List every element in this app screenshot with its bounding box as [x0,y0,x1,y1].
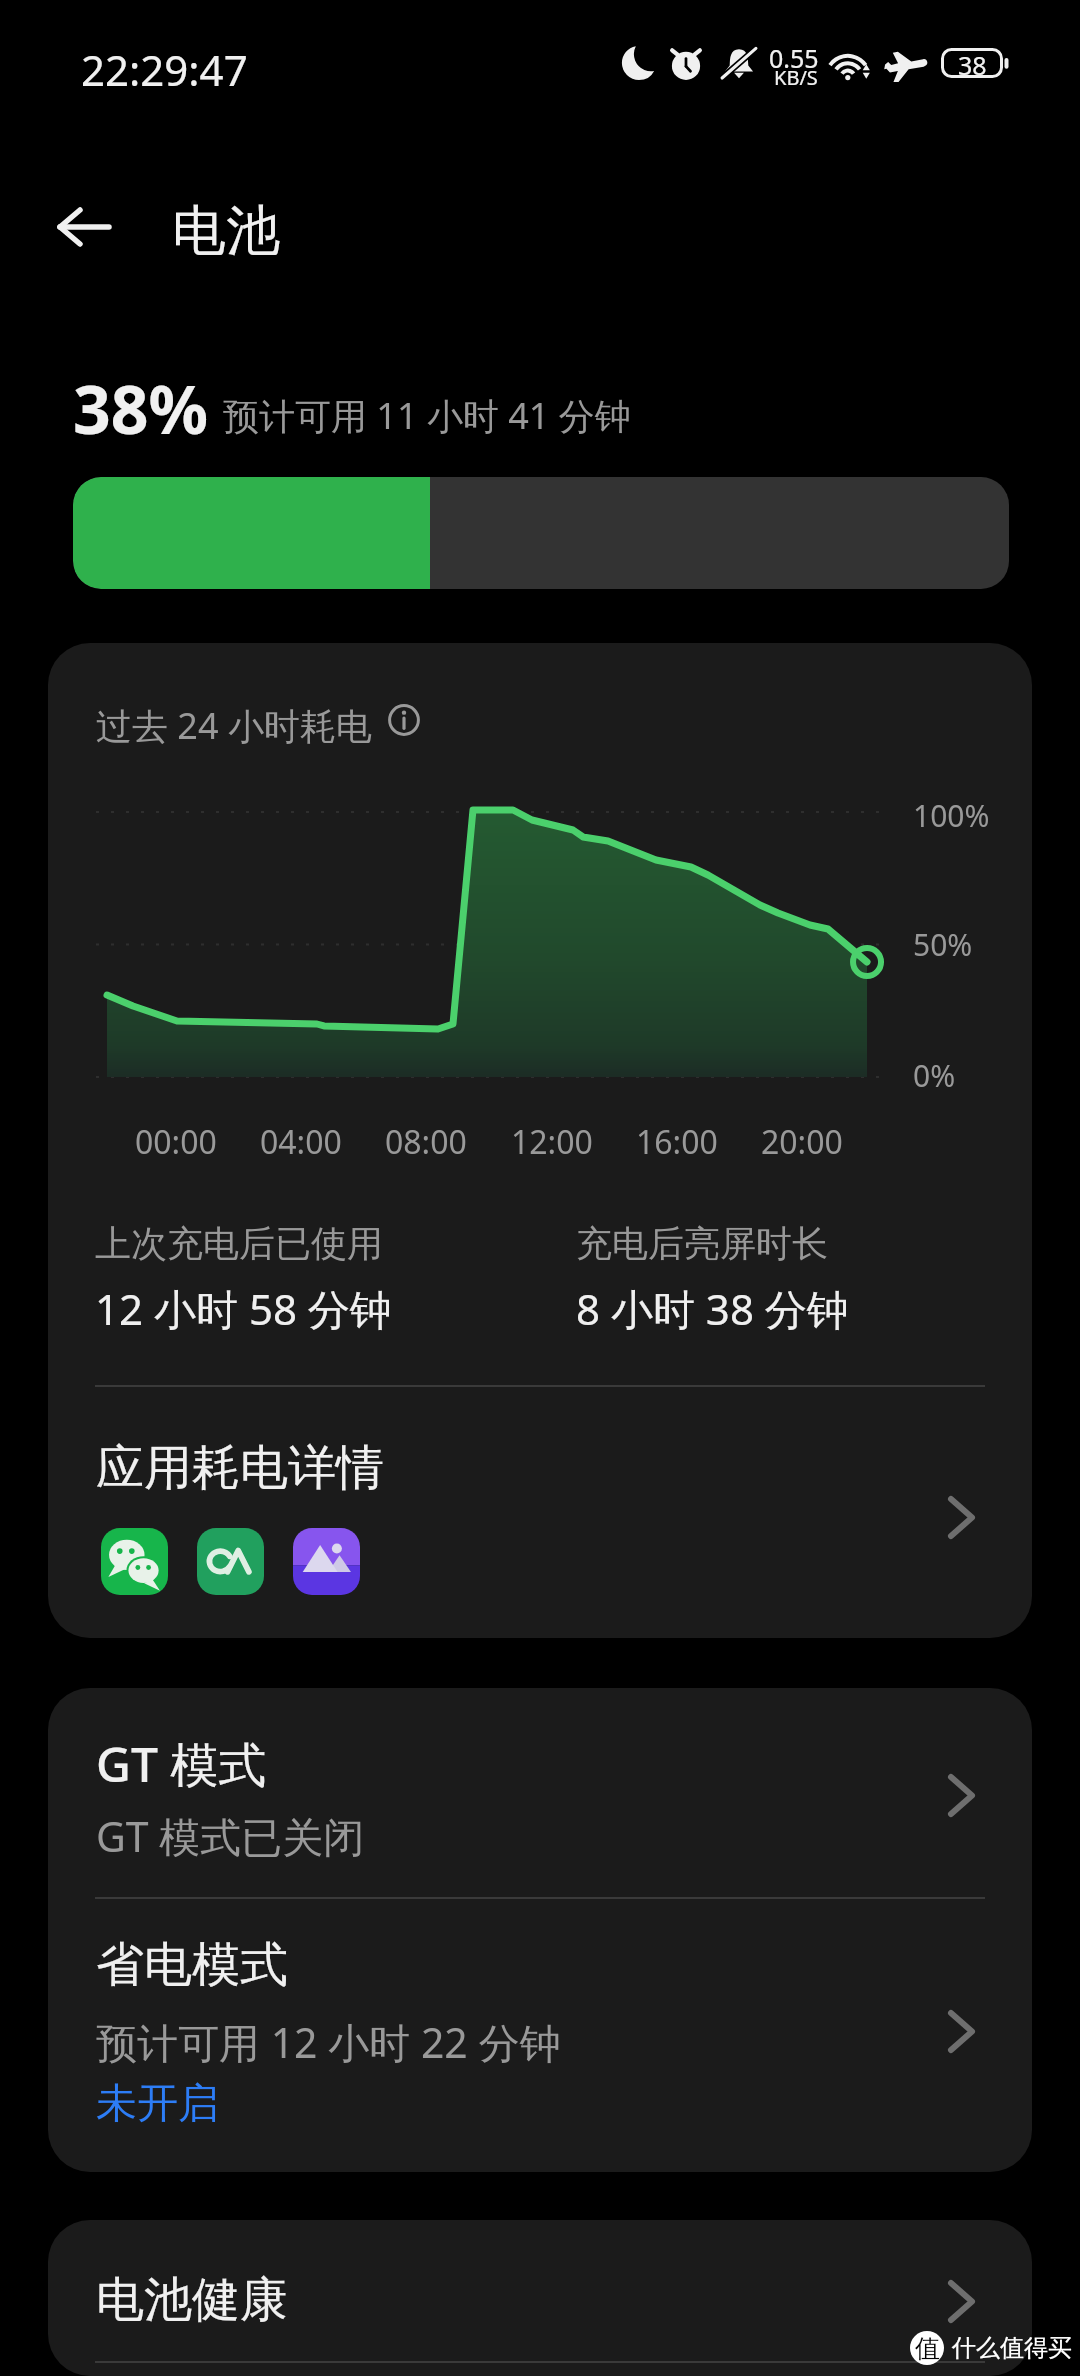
staticText: 20:00 [761,1120,843,1164]
staticText: 值 [915,2333,940,2364]
staticText: 16:00 [636,1120,718,1164]
staticText: 充电后亮屏时长 [576,1221,828,1266]
staticText: 应用耗电详情 [96,1438,384,1498]
staticText: 04:00 [260,1120,342,1164]
staticText: 电池健康 [96,2270,288,2330]
staticText: 38 [958,48,987,80]
staticText: 22:29:47 [81,41,248,98]
button[interactable]: 应用耗电详情 [48,1387,1032,1638]
button[interactable]: 省电模式 [48,1898,1032,2172]
staticText: KB/S [774,64,818,91]
staticText: 什么值得买 [952,2333,1072,2363]
button[interactable]: Back [42,184,128,270]
staticText: 上次充电后已使用 [95,1221,383,1266]
staticText: 省电模式 [96,1935,288,1995]
staticText: 38% [73,363,209,453]
staticText: 预计可用 12 小时 22 分钟 [96,2014,561,2070]
staticText: 12:00 [511,1120,593,1164]
staticText: 00:00 [135,1120,217,1164]
button[interactable]: 电池健康 [48,2220,1032,2361]
other: Open [948,1774,996,1822]
staticText: 8 小时 38 分钟 [576,1280,849,1337]
staticText: 08:00 [385,1120,467,1164]
staticText: GT 模式 [96,1731,267,1797]
staticText: 12 小时 58 分钟 [95,1280,392,1337]
staticText: 50% [913,924,973,965]
staticText: 未开启 [96,2078,219,2130]
staticText: 电池 [172,197,280,265]
staticText: 预计可用 11 小时 41 分钟 [223,391,631,440]
staticText: 0% [913,1055,956,1096]
other: Open [948,2280,996,2328]
staticText: 100% [913,795,990,836]
other: Open [948,2010,996,2058]
other: Open [948,1496,996,1544]
staticText: 0.55 [769,41,819,75]
staticText: GT 模式已关闭 [96,1808,365,1864]
staticText: 过去 24 小时耗电 [96,701,372,750]
button[interactable]: GT 模式 [48,1688,1032,1897]
